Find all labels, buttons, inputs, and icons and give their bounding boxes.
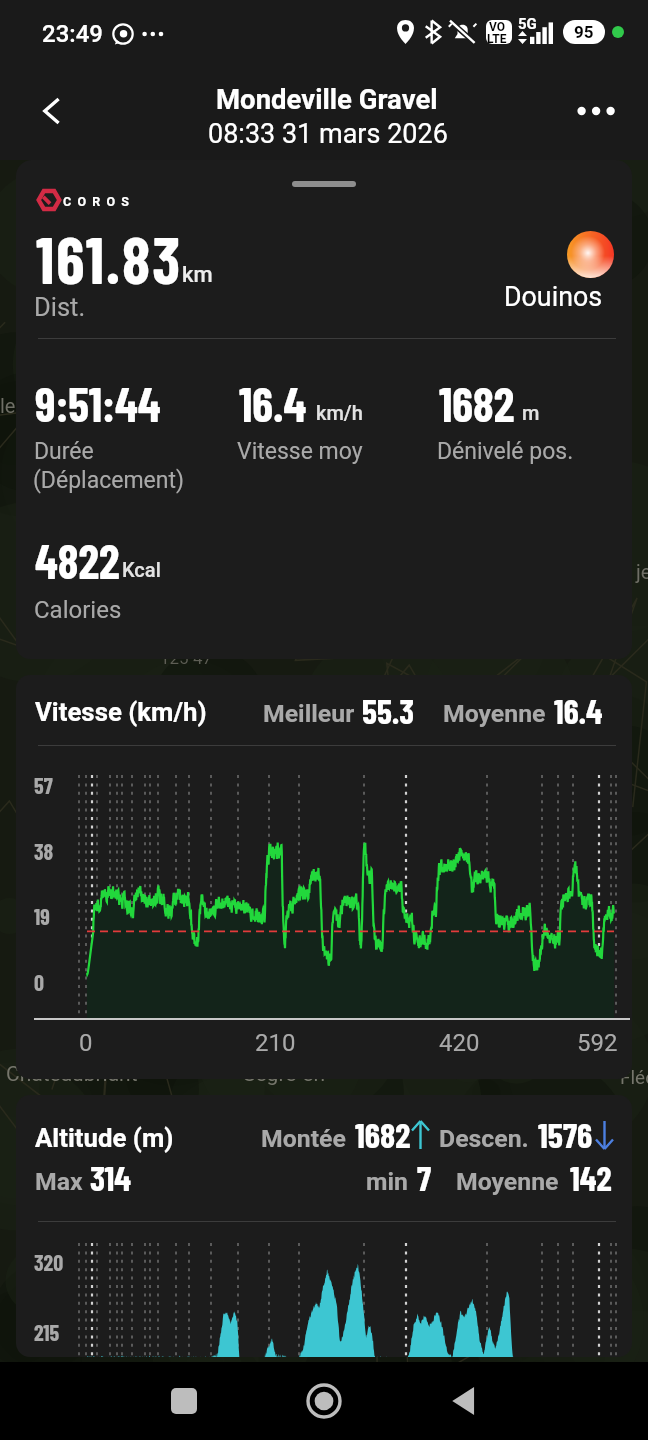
staticText: Segré-en-	[243, 1062, 331, 1087]
staticText: km	[182, 262, 213, 288]
button[interactable]: More options	[570, 85, 622, 137]
staticText: Descen.	[439, 1124, 529, 1153]
staticText: 592	[577, 1029, 618, 1057]
staticText: 161.83	[36, 220, 183, 297]
staticText: 1576	[538, 1113, 593, 1154]
staticText: Chateaubriant	[6, 1062, 138, 1087]
staticText: 55.3	[362, 690, 415, 731]
staticText: Vitesse (km/h)	[35, 697, 207, 727]
button[interactable]: Recent apps	[130, 1362, 238, 1440]
staticText: 9:51:44	[35, 375, 161, 431]
staticText: 4822	[35, 532, 120, 588]
staticText: m	[522, 401, 540, 424]
button[interactable]: Back	[26, 85, 78, 137]
staticText: Meilleur	[263, 699, 355, 728]
staticText: 314	[90, 1156, 131, 1197]
staticText: 95	[574, 22, 594, 42]
staticText: min	[366, 1167, 408, 1196]
staticText: 142	[570, 1156, 612, 1197]
staticText: 16.4	[239, 375, 307, 431]
button[interactable]: Vitesse (km/h)	[16, 675, 632, 1079]
staticText: 0	[79, 1029, 93, 1057]
staticText: COROS	[63, 194, 136, 209]
button[interactable]: Back	[410, 1362, 518, 1440]
staticText: 57	[34, 772, 53, 798]
staticText: 1682	[439, 375, 515, 431]
staticText: Montée	[261, 1124, 346, 1153]
staticText: Mondeville Gravel	[216, 83, 438, 115]
staticText: Moyenne	[456, 1167, 559, 1196]
staticText: 125 47	[160, 648, 212, 668]
staticText: (Déplacement)	[33, 467, 185, 494]
staticText: 5G	[518, 15, 537, 33]
staticText: Kcal	[122, 558, 161, 581]
staticText: 16.4	[554, 690, 603, 731]
button[interactable]: Altitude (m)	[16, 1095, 632, 1357]
staticText: 320	[34, 1249, 64, 1275]
staticText: 7	[417, 1156, 432, 1197]
staticText: 19	[34, 903, 50, 929]
staticText: Moyenne	[443, 699, 546, 728]
staticText: 0	[34, 969, 44, 995]
staticText: Altitude (m)	[35, 1123, 174, 1153]
staticText: 420	[439, 1029, 480, 1057]
staticText: Douinos	[504, 281, 603, 312]
staticText: 1682	[355, 1113, 411, 1154]
staticText: Calories	[34, 596, 122, 624]
staticText: Dénivelé pos.	[437, 438, 574, 465]
staticText: km/h	[316, 401, 363, 424]
button[interactable]: Home	[270, 1362, 378, 1440]
staticText: Durée	[34, 438, 94, 465]
staticText: Dist.	[34, 292, 86, 322]
staticText: LTE	[487, 32, 507, 44]
staticText: Max	[35, 1167, 83, 1196]
button[interactable]: COROS	[16, 160, 632, 659]
staticText: je	[636, 560, 648, 583]
staticText: 08:33 31 mars 2026	[208, 118, 448, 150]
staticText: le	[0, 394, 16, 417]
staticText: VO	[489, 20, 506, 34]
staticText: 38	[34, 838, 54, 864]
staticText: 210	[255, 1029, 296, 1057]
staticText: Vitesse moy	[237, 438, 363, 465]
staticText: 23:49	[42, 20, 103, 48]
staticText: Fléc	[620, 1066, 648, 1088]
staticText: 215	[34, 1319, 60, 1345]
